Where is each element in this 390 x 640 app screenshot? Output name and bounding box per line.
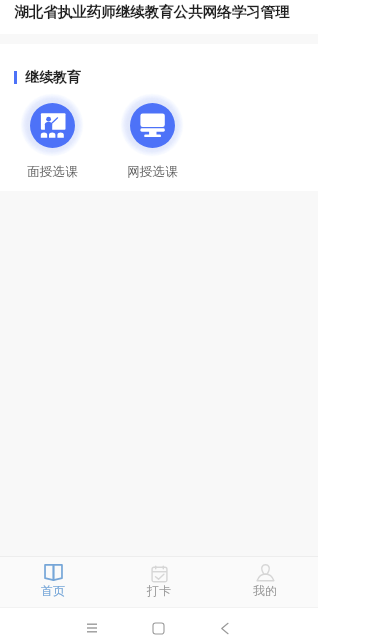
- staticText: 网授选课: [127, 164, 178, 180]
- button[interactable]: 网授选课: [102, 93, 202, 180]
- staticText: 继续教育: [25, 69, 81, 87]
- button[interactable]: 首页: [0, 557, 106, 607]
- staticText: 湖北省执业药师继续教育公共网络学习管理: [14, 3, 290, 21]
- button[interactable]: 面授选课: [2, 93, 102, 180]
- staticText: 打卡: [147, 583, 171, 598]
- button[interactable]: Home: [146, 616, 170, 640]
- button[interactable]: Recent apps: [80, 616, 104, 640]
- button[interactable]: 我的: [212, 557, 318, 607]
- button[interactable]: 打卡: [106, 557, 212, 607]
- button[interactable]: Back: [212, 616, 236, 640]
- staticText: 面授选课: [27, 164, 78, 180]
- staticText: 我的: [253, 583, 277, 598]
- staticText: 首页: [41, 583, 65, 598]
